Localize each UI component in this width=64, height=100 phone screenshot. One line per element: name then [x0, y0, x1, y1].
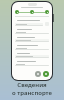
button[interactable]: Шаг 3 — [45, 10, 49, 14]
button[interactable]: Шаг 1 — [15, 10, 19, 14]
button[interactable]: Шаг 2 — [30, 10, 34, 14]
staticText: Сведения — [17, 81, 47, 89]
button[interactable]: Далее — [43, 71, 49, 77]
button[interactable]: Назад — [35, 71, 41, 77]
staticText: о транспорте — [12, 89, 52, 97]
